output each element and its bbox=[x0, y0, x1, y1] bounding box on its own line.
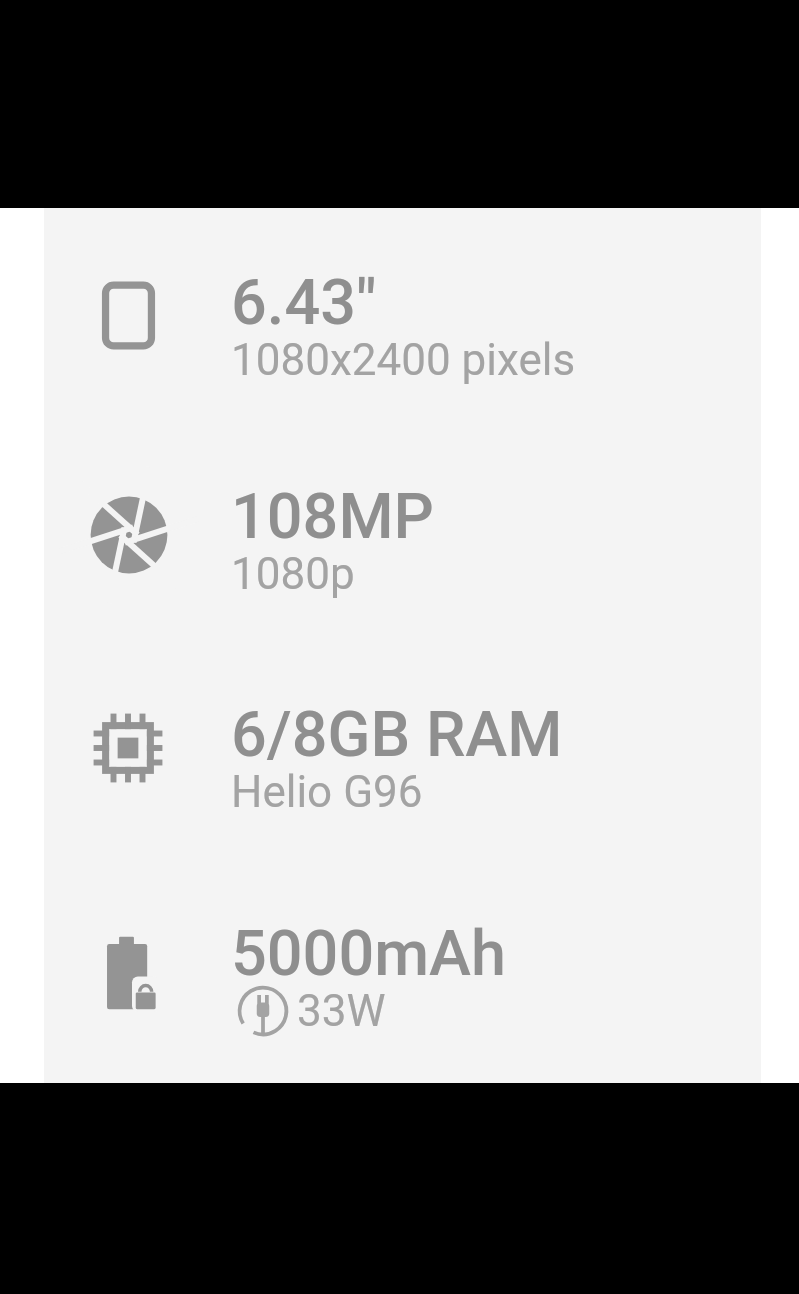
staticText: 33W bbox=[297, 985, 386, 1037]
button[interactable]: Memory and chipset bbox=[44, 652, 761, 852]
staticText: 5000mAh bbox=[231, 917, 506, 991]
staticText: 6.43" bbox=[231, 266, 377, 340]
button[interactable]: Camera bbox=[44, 434, 761, 634]
staticText: 1080x2400 pixels bbox=[231, 334, 576, 386]
staticText: 1080p bbox=[231, 548, 355, 600]
button[interactable]: Battery bbox=[44, 871, 761, 1071]
staticText: 6/8GB RAM bbox=[231, 698, 563, 772]
button[interactable]: Display bbox=[44, 220, 761, 420]
staticText: 108MP bbox=[231, 480, 434, 554]
staticText: Helio G96 bbox=[231, 766, 423, 818]
